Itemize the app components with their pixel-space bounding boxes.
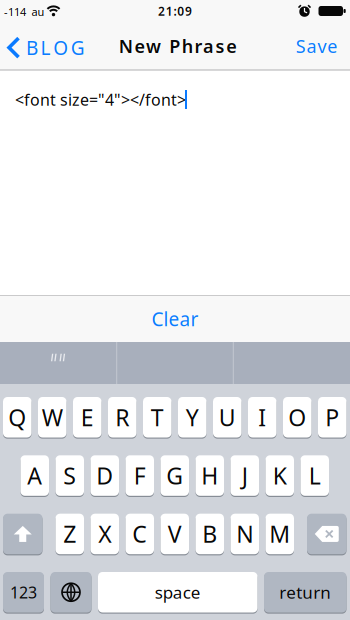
button[interactable]: Z [55,514,84,554]
staticText: Q [8,402,26,432]
button[interactable]: Clear [0,296,350,342]
button[interactable]: A [20,455,49,496]
staticText: 123 [10,582,37,603]
button[interactable]: O [283,397,311,437]
button[interactable]: S [55,455,84,496]
staticText: S [63,460,76,491]
staticText: M [269,519,290,549]
staticText: R [115,402,129,432]
button[interactable]: N [230,514,259,554]
staticText: N [236,519,253,549]
staticText: I [258,402,266,432]
button[interactable]: E [73,397,101,437]
staticText: O [288,402,306,432]
staticText: L [309,460,321,491]
staticText: G [166,460,183,491]
staticText: L [41,35,51,60]
staticText: B [202,519,217,549]
staticText: K [273,460,287,491]
staticText: New Phrase [119,34,237,58]
button[interactable]: K [265,455,294,496]
button[interactable]: D [90,455,119,496]
staticText: H [201,460,218,491]
button[interactable]: M [265,514,294,554]
staticText: D [96,460,113,491]
staticText: W [42,402,63,432]
button[interactable]: G [160,455,189,496]
button[interactable]: R [108,397,136,437]
button[interactable]: X [90,514,119,554]
button[interactable]: B [195,514,224,554]
button[interactable]: Y [178,397,206,437]
staticText: V [168,519,182,549]
staticText: C [132,519,147,549]
button[interactable]: C [125,514,154,554]
button[interactable]: I [248,397,276,437]
staticText: G [71,35,85,60]
staticText: -114 [4,4,26,19]
button[interactable]: Delete [307,514,346,554]
button[interactable]: B [7,35,85,60]
staticText: au [31,4,44,19]
staticText: return [279,581,331,604]
button[interactable]: Shift [3,514,42,554]
button[interactable]: P [318,397,346,437]
button[interactable]: 123 [3,572,44,612]
staticText: P [325,402,339,432]
staticText: Z [63,519,76,549]
button[interactable]: J [230,455,259,496]
staticText: B [26,35,38,60]
staticText: U [219,402,236,432]
button[interactable]: Quotation marks [0,342,116,384]
staticText: A [27,460,42,491]
button[interactable]: Save [296,34,337,58]
staticText: <font size="4"></font> [15,89,186,110]
staticText: T [151,402,164,432]
button[interactable]: F [125,455,154,496]
button[interactable]: H [195,455,224,496]
staticText: space [155,581,201,604]
staticText: F [134,460,146,491]
staticText: O [53,35,68,60]
button[interactable]: space [98,572,257,612]
button[interactable]: return [264,572,346,612]
button[interactable]: Next keyboard [50,572,91,612]
staticText: J [242,460,248,491]
button[interactable]: V [160,514,189,554]
button[interactable]: Q [3,397,31,437]
staticText: Save [296,34,337,58]
staticText: E [81,402,94,432]
button[interactable]: T [143,397,171,437]
button[interactable]: U [213,397,241,437]
staticText: Y [186,402,199,432]
button[interactable]: W [38,397,66,437]
button[interactable]: L [300,455,329,496]
staticText: X [98,519,111,549]
staticText: 21:09 [158,3,192,19]
staticText: Clear [151,306,198,331]
